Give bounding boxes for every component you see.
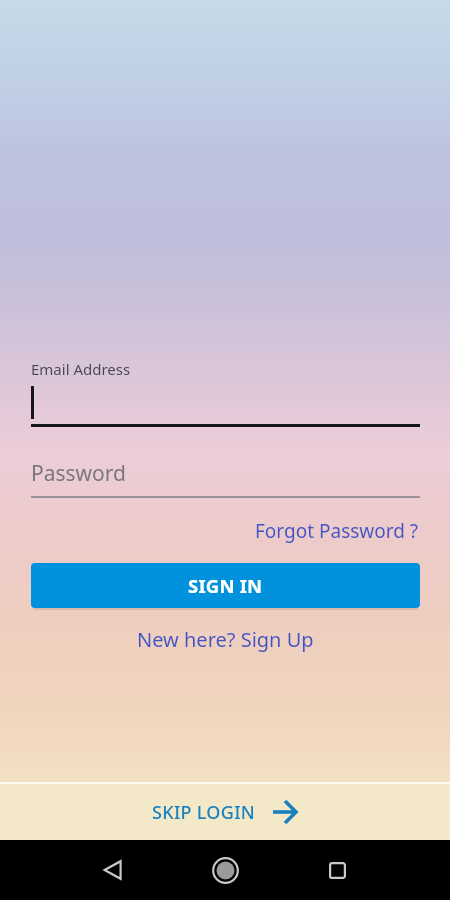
button[interactable] (313, 846, 361, 894)
button[interactable]: SIGN IN (31, 563, 420, 608)
button[interactable]: SKIP LOGIN (0, 784, 450, 840)
staticText: SIGN IN (188, 573, 263, 598)
staticText: SKIP LOGIN (152, 800, 256, 825)
button[interactable] (89, 846, 137, 894)
button[interactable]: Password (31, 455, 420, 498)
button[interactable]: New here? Sign Up (137, 626, 314, 653)
staticText: Email Address (31, 359, 131, 379)
button[interactable] (201, 846, 249, 894)
button[interactable]: Forgot Password ? (255, 518, 419, 544)
button[interactable] (31, 383, 420, 427)
staticText: Password (31, 459, 126, 488)
